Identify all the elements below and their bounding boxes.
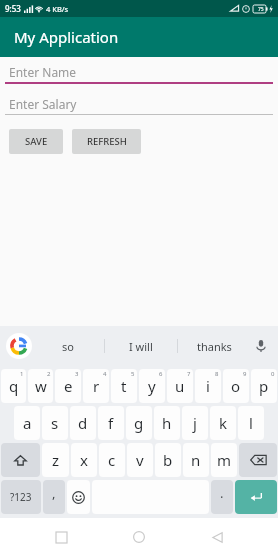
button[interactable]: i <box>195 369 221 403</box>
staticText: 0 <box>271 370 275 378</box>
staticText: I will <box>129 339 153 354</box>
button[interactable]: o <box>223 369 249 403</box>
staticText: SAVE <box>25 135 48 148</box>
button[interactable]: Google <box>6 333 32 359</box>
button[interactable]: g <box>126 406 152 440</box>
staticText: z <box>52 450 60 470</box>
staticText: g <box>134 413 144 433</box>
button[interactable]: , <box>43 480 65 514</box>
staticText: i <box>206 376 210 396</box>
staticText: x <box>80 450 88 470</box>
staticText: 6 <box>159 370 163 378</box>
button[interactable]: Enter Salary <box>5 95 273 115</box>
staticText: b <box>163 450 173 470</box>
button[interactable]: Backspace <box>239 443 277 477</box>
staticText: 7 <box>187 370 191 378</box>
button[interactable]: so <box>32 326 104 366</box>
button[interactable]: x <box>71 443 97 477</box>
button[interactable]: h <box>154 406 180 440</box>
staticText: n <box>191 450 201 470</box>
staticText: 3 <box>75 370 79 378</box>
staticText: 4 KB/s <box>46 4 69 14</box>
staticText: w <box>35 376 47 396</box>
button[interactable]: u <box>167 369 193 403</box>
button[interactable]: y <box>139 369 165 403</box>
button[interactable]: thanks <box>178 326 250 366</box>
button[interactable]: l <box>238 406 264 440</box>
staticText: q <box>9 376 19 396</box>
button[interactable]: b <box>155 443 181 477</box>
button[interactable]: SAVE <box>9 129 63 154</box>
button[interactable]: m <box>211 443 237 477</box>
staticText: Enter Name <box>9 64 77 80</box>
button[interactable]: t <box>111 369 137 403</box>
staticText: k <box>219 413 228 433</box>
button[interactable]: v <box>127 443 153 477</box>
button[interactable]: s <box>42 406 68 440</box>
staticText: thanks <box>197 339 232 354</box>
button[interactable]: REFRESH <box>72 129 141 154</box>
button[interactable]: Recents <box>44 520 78 554</box>
button[interactable]: q <box>1 369 26 403</box>
button[interactable]: Back <box>200 520 234 554</box>
button[interactable]: k <box>210 406 236 440</box>
staticText: . <box>220 484 224 502</box>
staticText: e <box>64 376 73 396</box>
button[interactable]: Voice input <box>250 335 272 357</box>
staticText: 75 <box>258 6 264 13</box>
staticText: 5 <box>131 370 135 378</box>
button[interactable]: Home <box>122 520 156 554</box>
staticText: 9:53 <box>5 3 21 14</box>
button[interactable]: p <box>251 369 277 403</box>
button[interactable]: Emoji <box>67 480 90 514</box>
staticText: 9 <box>243 370 247 378</box>
staticText: 8 <box>215 370 219 378</box>
button[interactable]: e <box>55 369 81 403</box>
button[interactable]: a <box>14 406 40 440</box>
staticText: m <box>217 450 232 470</box>
staticText: REFRESH <box>87 135 127 148</box>
button[interactable]: . <box>211 480 233 514</box>
button[interactable]: I will <box>105 326 177 366</box>
staticText: s <box>51 413 59 433</box>
staticText: , <box>52 484 56 502</box>
button[interactable]: f <box>98 406 124 440</box>
staticText: a <box>23 413 32 433</box>
staticText: 2 <box>47 370 51 378</box>
staticText: h <box>162 413 172 433</box>
staticText: f <box>108 413 114 433</box>
staticText: 4 <box>103 370 107 378</box>
staticText: u <box>175 376 185 396</box>
button[interactable]: w <box>28 369 53 403</box>
button[interactable]: Enter Name <box>5 63 273 84</box>
button[interactable]: n <box>183 443 209 477</box>
staticText: 1 <box>20 370 24 378</box>
staticText: My Application <box>14 27 119 47</box>
staticText: l <box>249 413 253 433</box>
staticText: r <box>93 376 100 396</box>
staticText: t <box>121 376 127 396</box>
staticText: so <box>62 339 74 354</box>
staticText: j <box>193 413 197 433</box>
button[interactable]: ?123 <box>1 480 41 514</box>
button[interactable]: c <box>99 443 125 477</box>
button[interactable]: j <box>182 406 208 440</box>
staticText: ?123 <box>10 490 32 504</box>
staticText: v <box>136 450 144 470</box>
button[interactable]: Shift <box>1 443 40 477</box>
button[interactable]: d <box>70 406 96 440</box>
button[interactable]: z <box>42 443 69 477</box>
staticText: d <box>78 413 88 433</box>
staticText: y <box>148 376 156 396</box>
staticText: p <box>259 376 269 396</box>
button[interactable]: r <box>83 369 109 403</box>
button[interactable]: Enter <box>235 480 277 514</box>
staticText: Enter Salary <box>9 96 77 112</box>
staticText: o <box>231 376 241 396</box>
staticText: c <box>108 450 116 470</box>
